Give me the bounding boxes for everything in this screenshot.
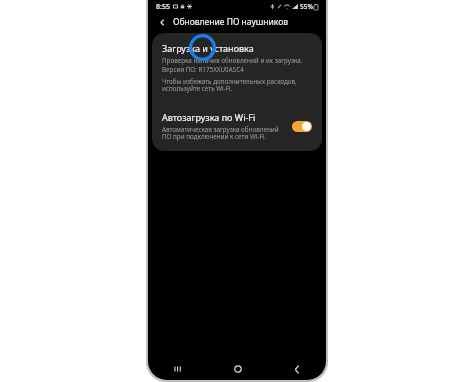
button[interactable]: Автозагрузка по Wi-Fi переключатель xyxy=(290,119,314,134)
staticText: Автозагрузка по Wi-Fi xyxy=(162,111,256,123)
staticText: Версия ПО: R175XXU0ASC4 xyxy=(162,65,244,74)
button[interactable]: Назад xyxy=(154,14,170,30)
button[interactable]: Назад xyxy=(267,358,326,380)
staticText: 8:55 xyxy=(156,2,170,12)
staticText: Чтобы избежать дополнительных расходов, … xyxy=(162,77,297,93)
staticText: Проверка наличия обновлений и их загрузк… xyxy=(162,56,303,65)
staticText: 55% xyxy=(300,2,313,11)
button[interactable]: Недавние приложения xyxy=(148,358,208,380)
staticText: Обновление ПО наушников xyxy=(173,16,289,28)
staticText: Автоматическая загрузка обновлений ПО пр… xyxy=(162,125,279,141)
button[interactable]: Главный экран xyxy=(208,358,267,380)
button[interactable]: Загрузка и установка xyxy=(152,33,322,101)
staticText: Загрузка и установка xyxy=(162,42,254,54)
button[interactable]: Автозагрузка по Wi-Fi xyxy=(152,105,322,151)
